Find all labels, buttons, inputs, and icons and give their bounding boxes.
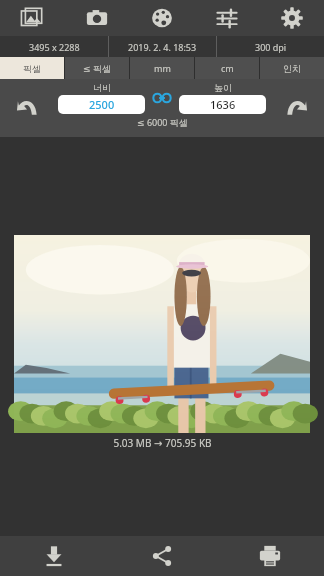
staticText: 1636: [210, 97, 236, 112]
staticText: ≤ 6000 픽셀: [137, 116, 188, 128]
staticText: 5.03 MB → 705.95 KB: [113, 436, 212, 450]
button[interactable]: Link ratio: [151, 87, 173, 109]
staticText: 인치: [283, 63, 301, 74]
button[interactable]: cm: [195, 57, 259, 79]
button[interactable]: ≤ 픽셀: [65, 57, 129, 79]
button[interactable]: Palette: [129, 0, 194, 36]
staticText: 2019. 2. 4. 18:53: [128, 41, 197, 53]
button[interactable]: Gallery: [0, 0, 64, 36]
staticText: 픽셀: [23, 63, 41, 74]
button[interactable]: Camera: [64, 0, 129, 36]
button[interactable]: Settings: [259, 0, 324, 36]
button[interactable]: Redo: [276, 88, 316, 128]
button[interactable]: mm: [130, 57, 194, 79]
button[interactable]: 인치: [260, 57, 324, 79]
button[interactable]: Undo: [8, 88, 48, 128]
staticText: mm: [154, 62, 171, 74]
button[interactable]: Adjust: [194, 0, 259, 36]
button[interactable]: 픽셀: [0, 57, 64, 79]
button[interactable]: 1636: [179, 95, 266, 114]
staticText: cm: [221, 62, 234, 74]
button[interactable]: [14, 235, 310, 433]
button[interactable]: Share: [108, 536, 216, 576]
staticText: 2500: [89, 97, 115, 112]
staticText: 너비: [93, 82, 111, 93]
staticText: 300 dpi: [255, 41, 287, 53]
button[interactable]: Print: [216, 536, 324, 576]
staticText: 3495 x 2288: [29, 41, 80, 53]
staticText: 높이: [214, 82, 232, 93]
staticText: ≤ 픽셀: [83, 62, 111, 74]
button[interactable]: Save: [0, 536, 108, 576]
button[interactable]: 2500: [58, 95, 145, 114]
